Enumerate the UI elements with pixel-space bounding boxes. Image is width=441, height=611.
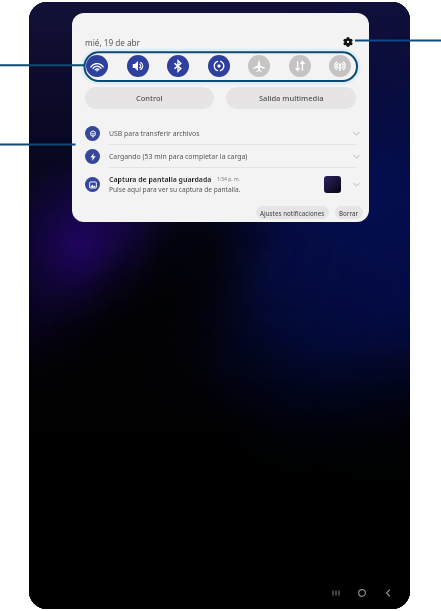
button[interactable]: USB para transferir archivos [72, 122, 369, 144]
button[interactable]: Salida multimedia [226, 87, 356, 109]
staticText: 1:54 p. m. [217, 176, 240, 183]
button[interactable]: Sound [127, 55, 149, 77]
staticText: mié, 19 de abr [85, 37, 140, 48]
staticText: Cargando (53 min para completar la carga… [109, 152, 248, 161]
staticText: Salida multimedia [259, 93, 324, 103]
button[interactable]: Wi-Fi [86, 55, 108, 77]
staticText: Control [136, 93, 163, 103]
button[interactable]: Ajustes notificaciones [256, 206, 329, 219]
button[interactable]: Captura de pantalla guardada [72, 168, 369, 200]
button[interactable]: Airplane mode [248, 55, 270, 77]
button[interactable]: Mobile data [289, 55, 311, 77]
button[interactable]: Auto rotate [208, 55, 230, 77]
button[interactable]: Borrar [335, 206, 363, 219]
staticText: Ajustes notificaciones [260, 209, 325, 217]
button[interactable]: Settings [339, 33, 357, 51]
staticText: Captura de pantalla guardada [109, 175, 212, 184]
button[interactable]: Back [382, 587, 394, 599]
button[interactable]: Hotspot [329, 55, 351, 77]
button[interactable]: Control [85, 87, 214, 109]
button[interactable]: Bluetooth [167, 55, 189, 77]
button[interactable]: Home [356, 587, 368, 599]
staticText: USB para transferir archivos [109, 129, 200, 138]
button[interactable]: Cargando (53 min para completar la carga… [72, 145, 369, 167]
staticText: Borrar [339, 209, 359, 217]
staticText: Pulse aquí para ver su captura de pantal… [109, 185, 241, 194]
button[interactable]: Recents [330, 587, 342, 599]
